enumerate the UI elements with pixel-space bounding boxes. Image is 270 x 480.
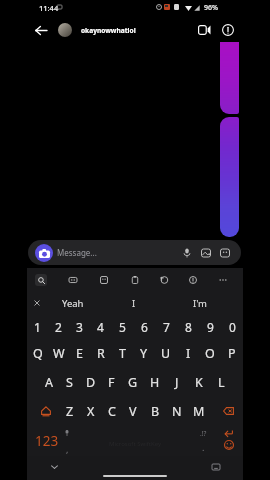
button[interactable]: More <box>217 274 229 286</box>
button[interactable]: Camera <box>28 240 241 265</box>
button[interactable]: Info <box>217 18 239 42</box>
staticText: H <box>150 374 160 391</box>
staticText: F <box>108 374 115 391</box>
button[interactable]: Back <box>30 18 52 42</box>
button[interactable]: Stickers <box>98 274 110 286</box>
button[interactable]: T <box>111 342 133 364</box>
button[interactable]: 1 <box>27 316 48 338</box>
button[interactable]: GIF <box>67 274 79 286</box>
button[interactable]: H <box>144 371 166 393</box>
button[interactable]: I'm <box>187 294 213 312</box>
staticText: E <box>76 345 83 362</box>
button[interactable]: Z <box>59 400 80 422</box>
button[interactable]: M <box>188 400 210 422</box>
button[interactable]: 5 <box>111 316 133 338</box>
staticText: 123 <box>35 432 59 450</box>
staticText: K <box>195 374 203 391</box>
button[interactable]: D <box>80 371 101 393</box>
button[interactable]: U <box>155 342 177 364</box>
staticText: I'm <box>193 297 207 310</box>
staticText: T <box>119 345 126 362</box>
button[interactable]: Hide keyboard <box>45 458 63 476</box>
button[interactable]: Voice message <box>178 244 195 261</box>
staticText: . <box>202 441 205 453</box>
staticText: J <box>175 374 179 391</box>
button[interactable]: Shift <box>35 400 57 422</box>
staticText: C <box>108 403 116 420</box>
button[interactable]: I <box>177 342 199 364</box>
staticText: N <box>172 403 182 420</box>
button[interactable]: O <box>199 342 221 364</box>
button[interactable]: Yeah <box>59 294 86 312</box>
button[interactable]: Search <box>35 274 47 286</box>
staticText: V <box>129 403 137 420</box>
button[interactable]: Clipboard <box>129 274 141 286</box>
button[interactable]: 3 <box>69 316 90 338</box>
staticText: X <box>87 403 95 420</box>
button[interactable]: 4 <box>90 316 111 338</box>
button[interactable]: , <box>57 441 77 457</box>
button[interactable]: Stickers <box>216 244 233 261</box>
button[interactable]: Voice input <box>57 422 77 444</box>
button[interactable]: Camera <box>35 244 53 262</box>
button[interactable] <box>220 42 239 114</box>
button[interactable]: 0 <box>221 316 243 338</box>
staticText: Q <box>33 345 43 362</box>
staticText: 0 <box>229 319 236 335</box>
button[interactable]: Video call <box>193 18 215 42</box>
staticText: M <box>193 403 205 420</box>
button[interactable]: Translate <box>158 274 170 286</box>
button[interactable]: J <box>166 371 188 393</box>
button[interactable]: 7 <box>155 316 177 338</box>
staticText: 96% <box>204 3 218 13</box>
staticText: O <box>205 345 215 362</box>
button[interactable]: Y <box>133 342 155 364</box>
button[interactable]: X <box>80 400 101 422</box>
button[interactable]: B <box>144 400 166 422</box>
button[interactable]: 6 <box>133 316 155 338</box>
button[interactable]: Emoji <box>220 436 238 454</box>
staticText: 5 <box>119 319 126 335</box>
button[interactable]: E <box>69 342 90 364</box>
button[interactable]: G <box>122 371 144 393</box>
button[interactable]: V <box>122 400 144 422</box>
button[interactable]: N <box>166 400 188 422</box>
staticText: L <box>218 374 225 391</box>
button[interactable]: Enter <box>218 425 238 441</box>
button[interactable]: . <box>193 439 213 455</box>
staticText: Yeah <box>62 297 84 310</box>
staticText: B <box>151 403 160 420</box>
button[interactable]: Q <box>27 342 48 364</box>
button[interactable]: 8 <box>177 316 199 338</box>
button[interactable]: Switch keyboard <box>207 458 225 476</box>
button[interactable]: Settings <box>187 274 199 286</box>
staticText: 8 <box>185 319 192 335</box>
button[interactable]: F <box>101 371 122 393</box>
staticText: I <box>132 297 136 310</box>
button[interactable]: K <box>188 371 210 393</box>
button[interactable]: okaynowwhatlol <box>58 18 178 42</box>
button[interactable]: 123 <box>31 428 63 454</box>
button[interactable]: Gallery <box>197 244 214 261</box>
button[interactable]: I <box>123 294 145 312</box>
button[interactable]: Close suggestions <box>28 294 46 312</box>
button[interactable]: L <box>210 371 232 393</box>
button[interactable]: W <box>48 342 69 364</box>
staticText: Y <box>140 345 148 362</box>
staticText: 1 <box>34 319 41 335</box>
button[interactable]: Backspace <box>217 400 239 422</box>
staticText: 11:44 <box>39 3 59 13</box>
button[interactable] <box>220 117 239 237</box>
button[interactable]: P <box>221 342 243 364</box>
button[interactable]: A <box>38 371 59 393</box>
button[interactable]: 9 <box>199 316 221 338</box>
staticText: .!? <box>200 429 207 438</box>
button[interactable]: 2 <box>48 316 69 338</box>
button[interactable]: S <box>59 371 80 393</box>
button[interactable]: C <box>101 400 122 422</box>
staticText: P <box>228 345 236 362</box>
button[interactable]: .!? <box>193 423 213 443</box>
button[interactable]: R <box>90 342 111 364</box>
